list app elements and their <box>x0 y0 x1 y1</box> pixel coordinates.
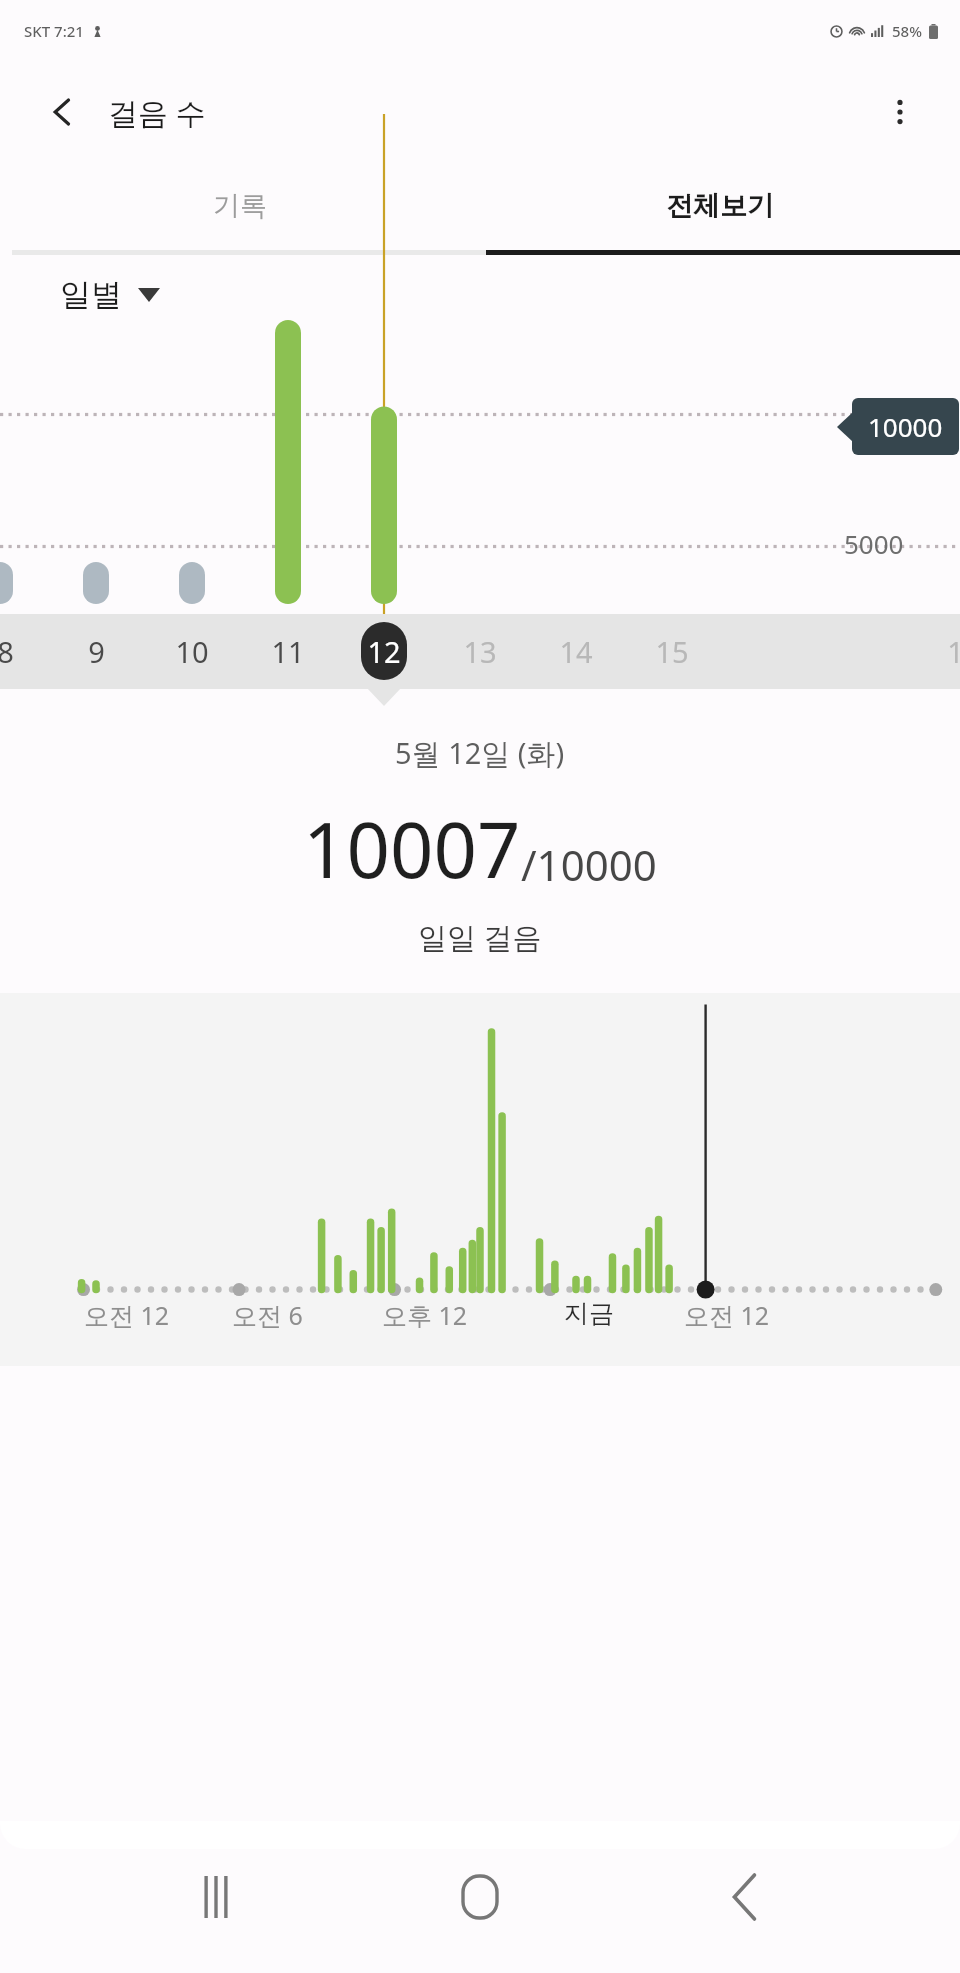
button[interactable]: 기록 <box>0 162 480 250</box>
staticText: 1 <box>947 632 960 671</box>
button[interactable]: 8 <box>0 618 33 684</box>
button[interactable]: 일별 <box>60 275 160 314</box>
staticText: 5월 12일 (화) <box>395 733 565 773</box>
staticText: 5000 <box>844 526 904 561</box>
staticText: 지금 <box>564 1298 614 1329</box>
button[interactable]: Back <box>40 89 86 135</box>
staticText: 9 <box>88 632 105 671</box>
staticText: 13 <box>463 632 497 671</box>
button[interactable]: 14 <box>548 618 604 684</box>
staticText: 오후 12 <box>382 1298 468 1332</box>
button[interactable]: Back <box>696 1849 792 1945</box>
staticText: 12 <box>367 632 401 671</box>
button[interactable]: 1 <box>927 618 960 684</box>
button[interactable]: 11 <box>260 618 316 684</box>
staticText: 11 <box>271 632 305 671</box>
staticText: /10000 <box>521 836 657 893</box>
staticText: 10000 <box>868 409 943 444</box>
staticText: 58% <box>892 21 922 41</box>
staticText: 14 <box>559 632 593 671</box>
button[interactable]: 15 <box>644 618 700 684</box>
button[interactable]: 전체보기 <box>480 162 960 250</box>
staticText: 걸음 수 <box>108 92 206 133</box>
staticText: 오전 12 <box>684 1298 770 1332</box>
staticText: 기록 <box>213 189 267 223</box>
button[interactable]: Home <box>432 1849 528 1945</box>
button[interactable]: 9 <box>68 618 124 684</box>
staticText: 오전 6 <box>232 1298 303 1332</box>
staticText: 10 <box>175 632 209 671</box>
staticText: 일별 <box>60 275 122 314</box>
staticText: SKT 7:21 <box>24 21 84 41</box>
staticText: 전체보기 <box>666 189 774 223</box>
button[interactable]: 10 <box>164 618 220 684</box>
staticText: 10007 <box>303 797 521 901</box>
staticText: 15 <box>655 632 689 671</box>
button[interactable]: 12 <box>356 618 412 684</box>
button[interactable]: Recents <box>168 1849 264 1945</box>
staticText: 일일 걸음 <box>418 917 542 957</box>
staticText: 8 <box>0 632 14 671</box>
staticText: 오전 12 <box>84 1298 170 1332</box>
button[interactable]: More options <box>876 88 924 136</box>
button[interactable]: 13 <box>452 618 508 684</box>
